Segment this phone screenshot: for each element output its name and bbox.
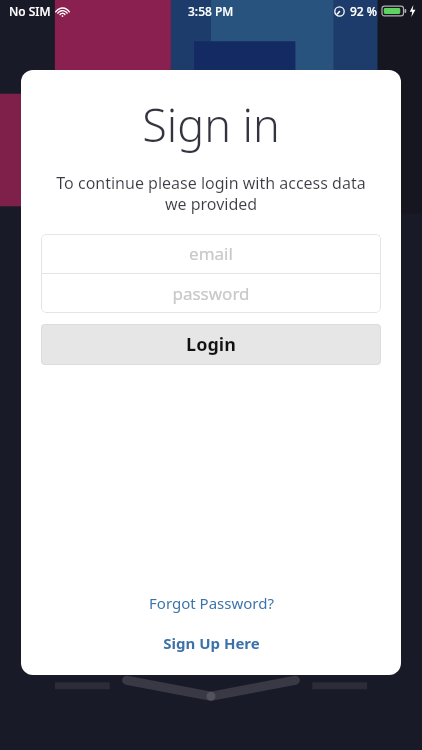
staticText: Sign in xyxy=(142,94,280,155)
button[interactable]: email xyxy=(41,234,381,273)
button[interactable]: password xyxy=(41,274,381,313)
button[interactable]: Login xyxy=(41,324,381,365)
staticText: Sign Up Here xyxy=(163,633,260,653)
staticText: Forgot Password? xyxy=(149,593,274,613)
staticText: To continue please login with access dat… xyxy=(56,172,366,215)
button[interactable]: Forgot Password? xyxy=(131,587,292,619)
staticText: Login xyxy=(186,332,236,357)
staticText: 3:58 PM xyxy=(188,3,234,19)
button[interactable]: Sign Up Here xyxy=(145,627,278,659)
staticText: email xyxy=(189,242,233,265)
staticText: No SIM xyxy=(9,3,51,19)
staticText: password xyxy=(172,282,250,305)
staticText: 92 % xyxy=(350,3,378,19)
